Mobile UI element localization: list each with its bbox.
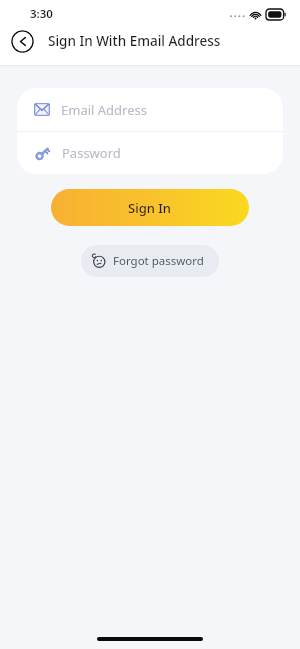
staticText: Forgot password <box>113 253 204 269</box>
staticText: Sign In With Email Address <box>48 32 290 50</box>
button[interactable]: Email Address <box>17 88 283 131</box>
staticText: Email Address <box>61 101 147 119</box>
staticText: Sign In <box>128 199 172 217</box>
button[interactable]: Password <box>17 132 283 174</box>
staticText: 3:30 <box>30 6 53 22</box>
staticText: Password <box>62 144 121 162</box>
button[interactable]: Forgot password <box>81 245 219 277</box>
button[interactable]: Back <box>11 30 34 53</box>
button[interactable]: Sign In <box>51 189 249 226</box>
